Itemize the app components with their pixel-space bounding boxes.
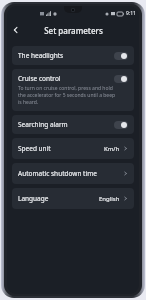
staticText: Cruise control [18,74,114,83]
button[interactable]: The headlights [12,46,134,65]
staticText: To turn on cruise control, press and hol… [18,85,119,106]
staticText: Set parameters [44,25,103,36]
button[interactable]: Automatic shutdown time [12,163,134,184]
staticText: The headlights [18,51,114,60]
button[interactable]: Toggle [114,75,128,83]
button[interactable]: Toggle [114,121,128,129]
button[interactable]: Searching alarm [12,115,134,134]
staticText: Speed unit [18,144,104,153]
button[interactable]: Language [12,188,134,209]
button[interactable]: Speed unit [12,138,134,159]
staticText: Language [18,194,99,203]
button[interactable]: Back [7,21,25,39]
button[interactable]: Cruise control [12,69,134,111]
staticText: English [99,195,120,203]
button[interactable]: Toggle [114,52,128,60]
staticText: Km/h [104,145,120,153]
staticText: 9:11 [126,10,136,17]
staticText: Searching alarm [18,120,114,129]
staticText: Automatic shutdown time [18,169,123,178]
